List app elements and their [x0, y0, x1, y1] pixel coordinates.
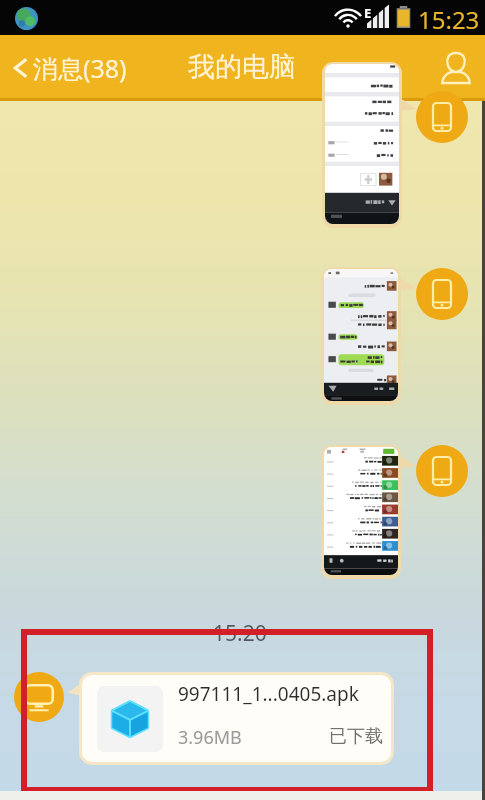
staticText: E: [364, 4, 372, 22]
button[interactable]: Contact: [427, 35, 485, 101]
button[interactable]: 997111_1...0405.apk: [82, 675, 391, 762]
staticText: 15:23: [418, 3, 480, 36]
button[interactable]: Phone avatar: [416, 445, 468, 497]
button[interactable]: Phone avatar: [416, 268, 468, 320]
staticText: 3.96MB: [178, 725, 242, 750]
button[interactable]: [325, 64, 399, 224]
staticText: 已下载: [329, 725, 383, 748]
button[interactable]: Computer avatar: [14, 672, 64, 722]
button[interactable]: [324, 269, 398, 401]
staticText: 我的电脑: [188, 50, 296, 84]
staticText: 15:20: [213, 619, 267, 648]
staticText: 消息(38): [33, 51, 127, 85]
button[interactable]: 消息(38): [0, 35, 137, 101]
button[interactable]: Phone avatar: [416, 91, 468, 143]
staticText: 997111_1...0405.apk: [178, 681, 359, 707]
button[interactable]: [324, 447, 398, 575]
